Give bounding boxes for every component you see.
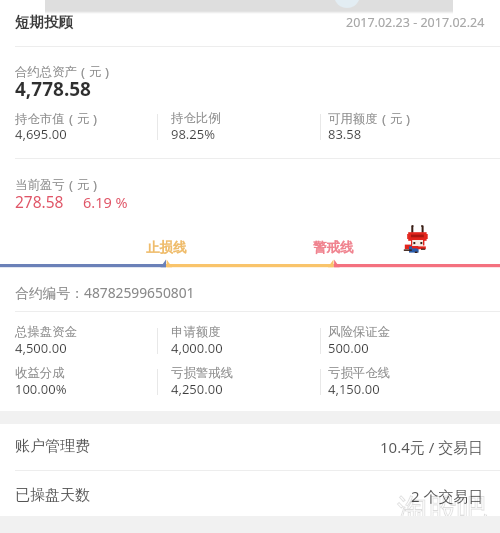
staticText: 收益分成 (15, 365, 65, 381)
staticText: 4,250.00 (171, 380, 223, 398)
staticText: ) (93, 110, 98, 128)
staticText: 持仓比例 (171, 110, 221, 126)
staticText: 100.00% (15, 380, 67, 398)
staticText: 可用额度 (328, 111, 378, 127)
staticText: 总操盘资金 (15, 324, 77, 340)
staticText: 6.19 % (83, 192, 128, 212)
staticText: ) (93, 176, 98, 194)
staticText: ) (105, 63, 110, 81)
staticText: 警戒线 (313, 239, 354, 256)
staticText: 亏损平仓线 (328, 365, 390, 381)
staticText: 500.00 (328, 339, 369, 357)
staticText: 83.58 (328, 125, 362, 143)
staticText: 账户管理费 (15, 437, 90, 456)
staticText: 元 (89, 64, 102, 80)
staticText: 4,000.00 (171, 339, 223, 357)
staticText: ( (69, 176, 74, 194)
staticText: ) (406, 110, 411, 128)
staticText: 4,500.00 (15, 339, 67, 357)
staticText: 元 (390, 111, 403, 127)
staticText: 2017.02.23 - 2017.02.24 (346, 14, 485, 31)
staticText: 风险保证金 (328, 324, 390, 340)
staticText: 10.4元 / 交易日 (380, 437, 484, 457)
button[interactable]: 已操盘天数 (0, 472, 500, 519)
staticText: 4,150.00 (328, 380, 380, 398)
staticText: 申请额度 (171, 324, 221, 340)
staticText: 98.25% (171, 125, 216, 143)
staticText: ( (382, 110, 387, 128)
staticText: 止损线 (146, 239, 187, 256)
staticText: 元 (77, 111, 90, 127)
staticText: 合约编号：48782599650801 (15, 283, 195, 302)
staticText: 持仓市值 (15, 111, 65, 127)
staticText: 淘股吧 (397, 491, 487, 529)
staticText: ( (81, 63, 86, 81)
staticText: 元 (77, 177, 90, 193)
staticText: 4,695.00 (15, 125, 67, 143)
staticText: 278.58 (15, 191, 64, 212)
button[interactable]: 账户管理费 (0, 423, 500, 470)
staticText: 合约总资产 (15, 64, 77, 80)
staticText: 亏损警戒线 (171, 365, 233, 381)
staticText: ( (69, 110, 74, 128)
staticText: 已操盘天数 (15, 486, 90, 505)
staticText: 当前盈亏 (15, 177, 65, 193)
staticText: 短期投顾 (15, 13, 73, 31)
staticText: 4,778.58 (15, 76, 91, 102)
staticText: 2 个交易日 (411, 486, 484, 506)
